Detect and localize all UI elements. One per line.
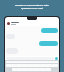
staticText: Engage in conversations with: [15, 4, 49, 7]
button[interactable]: [41, 28, 58, 33]
button[interactable]: [5, 21, 59, 26]
button[interactable]: Send: [55, 57, 58, 60]
staticText: Qualified Live Chat: [21, 7, 43, 10]
button[interactable]: [6, 34, 15, 39]
button[interactable]: [6, 48, 18, 54]
button[interactable]: [39, 41, 58, 46]
